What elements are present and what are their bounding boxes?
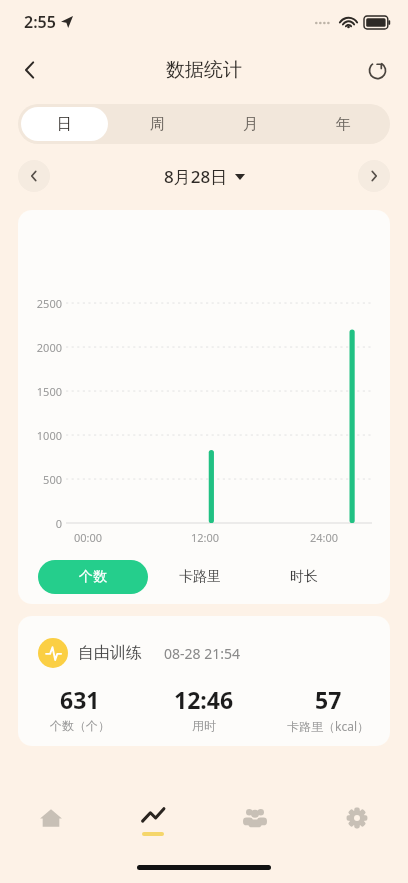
staticText: 8月28日 [164, 165, 228, 188]
button[interactable]: Settings [306, 789, 408, 851]
button[interactable]: 个数 [38, 560, 148, 594]
button[interactable]: 卡路里 [148, 560, 252, 594]
staticText: 数据统计 [166, 58, 242, 82]
button[interactable]: 自由训练 [18, 616, 390, 746]
staticText: 时长 [290, 568, 318, 586]
staticText: 24:00 [310, 530, 339, 545]
staticText: 2:55 [24, 11, 56, 33]
staticText: 个数（个） [50, 718, 110, 733]
staticText: 用时 [192, 718, 216, 733]
button[interactable]: Next day [358, 160, 390, 192]
button[interactable]: Home [0, 789, 102, 851]
button[interactable]: 周 [114, 107, 201, 141]
staticText: 周 [150, 115, 165, 134]
staticText: 631 [60, 684, 100, 715]
staticText: 08-28 21:54 [164, 644, 240, 663]
staticText: 个数 [79, 568, 107, 586]
staticText: 卡路里 [179, 568, 221, 586]
button[interactable]: Refresh [356, 49, 398, 91]
staticText: 12:46 [174, 684, 234, 715]
button[interactable]: 8月28日 [164, 165, 245, 188]
button[interactable]: Friends [204, 789, 306, 851]
staticText: 自由训练 [78, 643, 142, 663]
button[interactable]: 时长 [252, 560, 356, 594]
staticText: 2000 [22, 340, 62, 355]
staticText: 1000 [22, 428, 62, 443]
button[interactable]: Back [8, 48, 52, 92]
staticText: 12:00 [191, 530, 220, 545]
staticText: 日 [57, 115, 72, 134]
staticText: 500 [22, 472, 62, 487]
staticText: 月 [243, 115, 258, 134]
staticText: 2500 [22, 296, 62, 311]
button[interactable]: 年 [300, 107, 387, 141]
staticText: 年 [336, 115, 351, 134]
staticText: 0 [22, 516, 62, 531]
button[interactable]: Statistics [102, 789, 204, 851]
staticText: 1500 [22, 384, 62, 399]
button[interactable]: 日 [21, 107, 108, 141]
staticText: 卡路里（kcal） [287, 718, 369, 734]
staticText: 57 [315, 684, 342, 715]
staticText: 00:00 [74, 530, 103, 545]
button[interactable]: Previous day [18, 160, 50, 192]
button[interactable]: 月 [207, 107, 294, 141]
